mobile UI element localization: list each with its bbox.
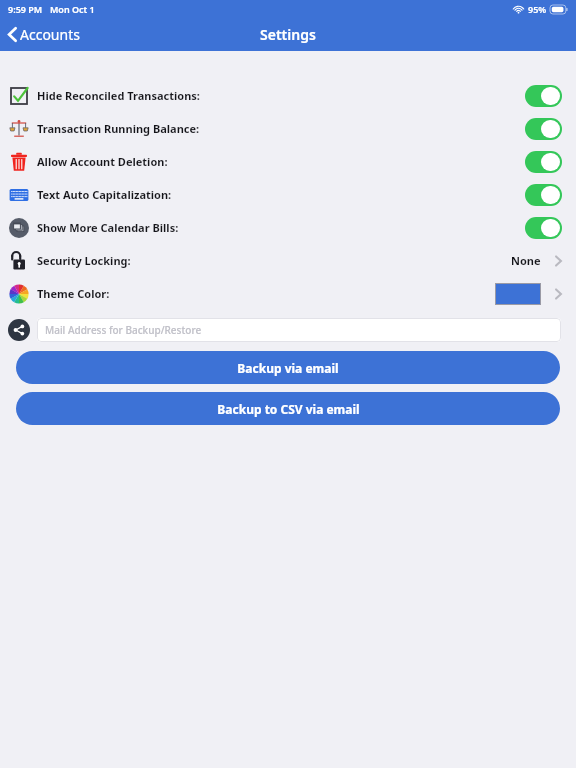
staticText: Mon Oct 1: [50, 3, 95, 15]
staticText: Settings: [260, 25, 316, 44]
button[interactable]: Security Locking:: [0, 244, 576, 277]
staticText: Backup via email: [237, 360, 339, 376]
staticText: Hide Reconciled Transactions:: [37, 88, 200, 103]
staticText: 9:59 PM: [8, 3, 43, 15]
button[interactable]: Accounts: [0, 21, 90, 48]
button[interactable]: Mail Address for Backup/Restore: [37, 318, 561, 342]
button[interactable]: Share: [8, 319, 30, 341]
button[interactable]: Transaction Running Balance:: [525, 118, 562, 140]
button[interactable]: Backup to CSV via email: [16, 392, 560, 425]
button[interactable]: Show More Calendar Bills:: [525, 217, 562, 239]
button[interactable]: Text Auto Capitalization:: [525, 184, 562, 206]
staticText: Allow Account Deletion:: [37, 154, 168, 169]
staticText: Mail Address for Backup/Restore: [45, 323, 202, 337]
staticText: Show More Calendar Bills:: [37, 220, 179, 235]
staticText: Accounts: [20, 25, 80, 44]
staticText: Theme Color:: [37, 286, 110, 301]
button[interactable]: Theme Color:: [0, 277, 576, 310]
button[interactable]: Backup via email: [16, 351, 560, 384]
staticText: Backup to CSV via email: [217, 401, 360, 417]
staticText: Transaction Running Balance:: [37, 121, 200, 136]
staticText: Security Locking:: [37, 253, 131, 268]
staticText: Text Auto Capitalization:: [37, 187, 172, 202]
staticText: 95%: [528, 3, 547, 15]
staticText: None: [511, 253, 541, 268]
button[interactable]: Hide Reconciled Transactions:: [525, 85, 562, 107]
button[interactable]: Allow Account Deletion:: [525, 151, 562, 173]
